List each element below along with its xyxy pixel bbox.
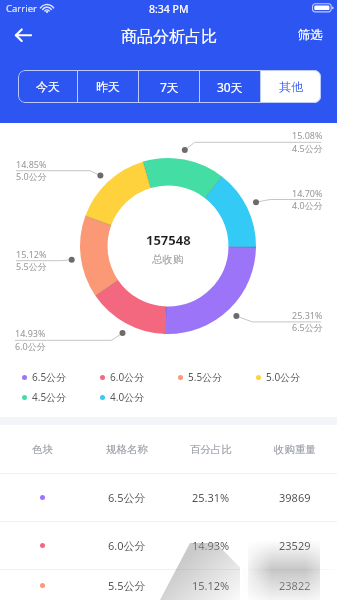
staticText: 6.0公分 <box>108 538 146 553</box>
button[interactable]: 6.5公分 <box>0 474 337 521</box>
staticText: 157548 <box>146 231 191 249</box>
staticText: 15.08% <box>292 129 323 141</box>
staticText: 39869 <box>279 490 311 505</box>
staticText: 15.12% <box>16 248 47 260</box>
staticText: 4.0公分 <box>110 390 145 404</box>
staticText: 6.0公分 <box>110 370 145 384</box>
staticText: 25.31% <box>292 309 323 321</box>
staticText: 今天 <box>36 79 60 94</box>
staticText: 5.5公分 <box>188 370 223 384</box>
staticText: 25.31% <box>192 490 230 505</box>
staticText: 规格名称 <box>106 443 148 456</box>
staticText: 总收购 <box>152 253 184 266</box>
staticText: 商品分析占比 <box>121 27 217 47</box>
staticText: 昨天 <box>96 79 120 94</box>
staticText: 6.5公分 <box>32 370 67 384</box>
staticText: 14.70% <box>292 187 323 199</box>
staticText: 5.5公分 <box>16 260 47 272</box>
staticText: Carrier <box>6 2 37 15</box>
staticText: 14.85% <box>16 158 47 170</box>
button[interactable]: 6.0公分 <box>0 522 337 569</box>
button[interactable]: 6.0公分 <box>100 369 145 385</box>
staticText: 4.5公分 <box>292 142 323 154</box>
staticText: 14.93% <box>15 327 46 339</box>
button[interactable]: 5.5公分 <box>178 369 223 385</box>
staticText: 筛选 <box>298 27 323 43</box>
staticText: 6.0公分 <box>15 340 46 352</box>
staticText: 8:34 PM <box>149 2 189 16</box>
staticText: 6.5公分 <box>292 321 323 333</box>
staticText: 5.0公分 <box>16 170 47 182</box>
button[interactable]: 筛选 <box>288 20 332 50</box>
button[interactable]: 5.0公分 <box>256 369 301 385</box>
staticText: 色块 <box>32 443 53 456</box>
button[interactable]: 今天 <box>18 70 77 103</box>
staticText: 6.5公分 <box>108 490 146 505</box>
staticText: 23529 <box>279 538 311 553</box>
button[interactable]: 昨天 <box>78 70 138 103</box>
staticText: 4.0公分 <box>292 199 323 211</box>
button[interactable]: 其他 <box>261 70 321 103</box>
staticText: 其他 <box>279 79 303 94</box>
button[interactable]: Back <box>7 21 41 49</box>
button[interactable]: 4.0公分 <box>100 389 145 405</box>
staticText: 收购重量 <box>274 443 316 456</box>
staticText: 23822 <box>279 578 311 593</box>
button[interactable]: 7天 <box>139 70 199 103</box>
staticText: 百分占比 <box>190 443 232 456</box>
staticText: 7天 <box>160 79 179 95</box>
staticText: 5.5公分 <box>108 578 146 593</box>
staticText: 15.12% <box>192 578 230 593</box>
staticText: 14.93% <box>192 538 230 553</box>
button[interactable]: 30天 <box>200 70 260 103</box>
staticText: 4.5公分 <box>32 390 67 404</box>
button[interactable]: 6.5公分 <box>22 369 67 385</box>
staticText: 5.0公分 <box>266 370 301 384</box>
button[interactable]: 4.5公分 <box>22 389 67 405</box>
button[interactable]: 5.5公分 <box>0 570 337 600</box>
staticText: 30天 <box>217 79 243 95</box>
